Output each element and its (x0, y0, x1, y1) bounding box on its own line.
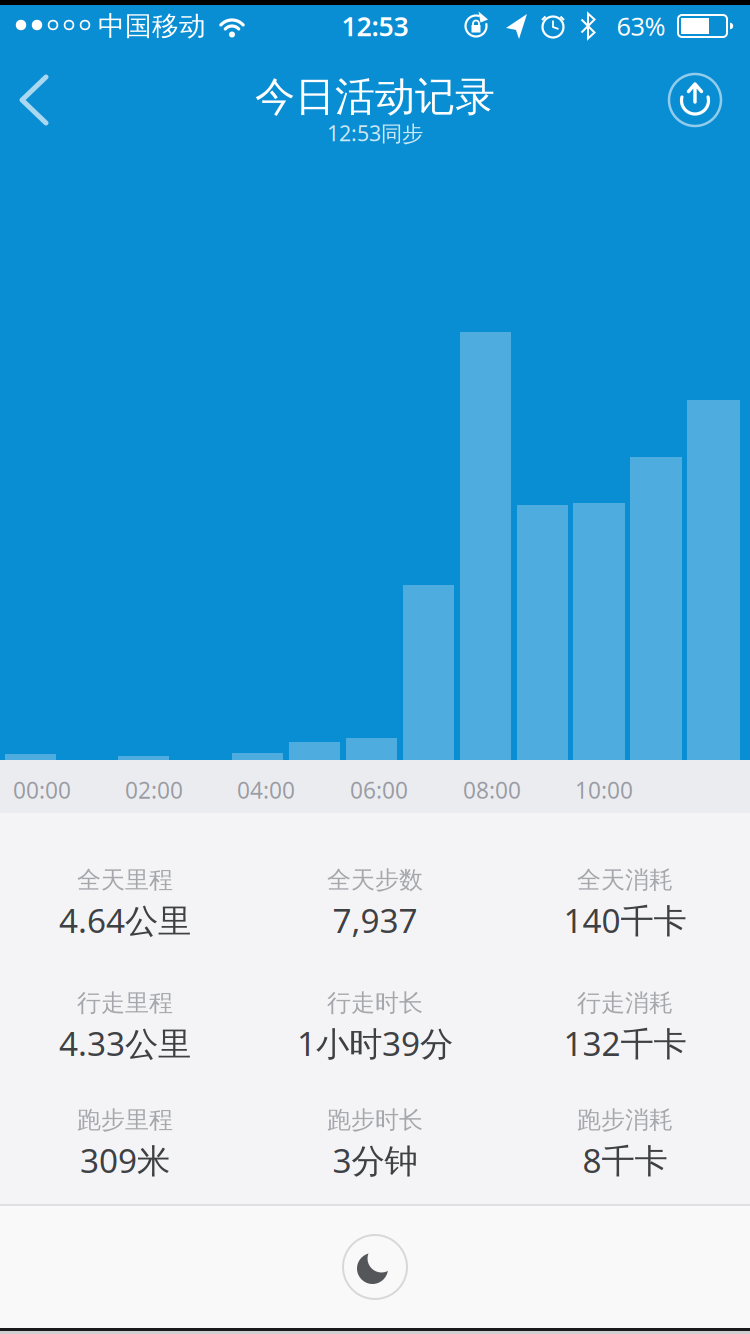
staticText: 10:00 (575, 775, 633, 805)
staticText: 跑步里程 (77, 1105, 173, 1135)
staticText: 行走里程 (77, 988, 173, 1018)
staticText: 4.64公里 (59, 898, 191, 942)
staticText: 04:00 (237, 775, 295, 805)
button[interactable]: Sleep mode (341, 1233, 409, 1301)
staticText: 行走消耗 (577, 988, 673, 1018)
staticText: 08:00 (463, 775, 521, 805)
staticText: 06:00 (350, 775, 408, 805)
staticText: 1小时39分 (297, 1021, 453, 1065)
staticText: 全天消耗 (577, 865, 673, 895)
staticText: 中国移动 (98, 10, 206, 42)
staticText: 309米 (80, 1138, 170, 1182)
staticText: 3分钟 (332, 1138, 417, 1182)
staticText: 12:53同步 (327, 119, 423, 147)
button[interactable]: Back (10, 68, 66, 132)
staticText: 12:53 (341, 8, 408, 44)
staticText: 132千卡 (563, 1021, 686, 1065)
staticText: 行走时长 (327, 988, 423, 1018)
staticText: 63% (616, 9, 665, 43)
staticText: 全天里程 (77, 865, 173, 895)
staticText: 02:00 (125, 775, 183, 805)
staticText: 跑步消耗 (577, 1105, 673, 1135)
staticText: 全天步数 (327, 865, 423, 895)
staticText: 140千卡 (563, 898, 686, 942)
button[interactable]: Sync (662, 67, 728, 133)
staticText: 4.33公里 (59, 1021, 191, 1065)
staticText: 7,937 (332, 898, 417, 942)
staticText: 跑步时长 (327, 1105, 423, 1135)
staticText: 8千卡 (582, 1138, 667, 1182)
staticText: 今日活动记录 (255, 72, 495, 121)
staticText: 00:00 (13, 775, 71, 805)
